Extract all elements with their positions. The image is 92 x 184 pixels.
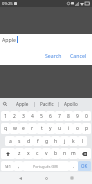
staticText: q: [4, 125, 8, 132]
button[interactable]: j: [60, 136, 69, 146]
button[interactable]: r: [28, 123, 37, 134]
staticText: Português (BR): [33, 164, 59, 169]
staticText: p: [85, 125, 89, 132]
staticText: f: [37, 138, 39, 145]
staticText: 7: [58, 113, 61, 120]
button[interactable]: z: [15, 148, 24, 159]
staticText: d: [27, 138, 31, 145]
button[interactable]: c: [33, 148, 42, 159]
staticText: y: [49, 125, 52, 132]
button[interactable]: Cancel: [68, 50, 89, 61]
button[interactable]: OK: [78, 161, 91, 171]
button[interactable]: q: [1, 123, 10, 134]
staticText: g: [45, 138, 49, 145]
button[interactable]: 1: [1, 111, 10, 121]
staticText: Apple: [2, 36, 16, 43]
staticText: 8: [67, 113, 70, 120]
button[interactable]: Pacific: [35, 98, 58, 110]
button[interactable]: Search: [43, 50, 64, 61]
staticText: 3: [22, 113, 25, 120]
button[interactable]: 8: [64, 111, 73, 121]
staticText: !#1: [5, 164, 11, 169]
button[interactable]: o: [73, 123, 82, 134]
staticText: s: [18, 138, 21, 145]
button[interactable]: Apollo: [59, 98, 82, 110]
button[interactable]: l: [78, 136, 87, 146]
button[interactable]: Backspace: [78, 148, 91, 159]
button[interactable]: k: [69, 136, 78, 146]
button[interactable]: Home: [40, 172, 52, 184]
button[interactable]: Search suggestions: [0, 98, 10, 110]
button[interactable]: ,: [14, 161, 23, 171]
staticText: z: [18, 150, 21, 157]
button[interactable]: h: [51, 136, 60, 146]
staticText: a: [9, 138, 12, 145]
button[interactable]: d: [24, 136, 33, 146]
staticText: Cancel: [70, 52, 87, 59]
staticText: e: [22, 125, 25, 132]
button[interactable]: 3: [19, 111, 28, 121]
staticText: n: [63, 150, 67, 157]
button[interactable]: Português (BR): [23, 161, 69, 171]
button[interactable]: !#1: [1, 161, 14, 171]
staticText: l: [82, 138, 84, 145]
button[interactable]: .: [69, 161, 78, 171]
button[interactable]: 6: [46, 111, 55, 121]
button[interactable]: w: [10, 123, 19, 134]
staticText: 5: [40, 113, 43, 120]
button[interactable]: Apple: [10, 98, 34, 110]
button[interactable]: 4: [28, 111, 37, 121]
button[interactable]: x: [24, 148, 33, 159]
button[interactable]: u: [55, 123, 64, 134]
button[interactable]: 0: [82, 111, 91, 121]
staticText: 0: [85, 113, 88, 120]
staticText: OK: [81, 163, 88, 169]
button[interactable]: Shift: [1, 148, 15, 159]
staticText: Apple: [16, 101, 29, 107]
staticText: ,: [18, 163, 20, 170]
staticText: 09:25: [2, 1, 13, 7]
staticText: h: [54, 138, 58, 145]
button[interactable]: Recent apps: [66, 172, 78, 184]
staticText: v: [45, 150, 48, 157]
staticText: 1: [4, 113, 7, 120]
button[interactable]: Back: [14, 172, 26, 184]
button[interactable]: y: [46, 123, 55, 134]
staticText: c: [36, 150, 39, 157]
staticText: 6: [49, 113, 52, 120]
button[interactable]: 2: [10, 111, 19, 121]
staticText: 4: [31, 113, 34, 120]
staticText: .: [73, 163, 75, 170]
button[interactable]: f: [33, 136, 42, 146]
button[interactable]: b: [51, 148, 60, 159]
staticText: x: [27, 150, 30, 157]
staticText: m: [71, 150, 76, 157]
staticText: k: [72, 138, 75, 145]
button[interactable]: 9: [73, 111, 82, 121]
button[interactable]: s: [15, 136, 24, 146]
staticText: 9: [76, 113, 79, 120]
staticText: r: [31, 125, 34, 132]
staticText: Search: [45, 52, 62, 59]
button[interactable]: 7: [55, 111, 64, 121]
staticText: j: [64, 138, 66, 145]
button[interactable]: n: [60, 148, 69, 159]
staticText: w: [13, 125, 17, 132]
button[interactable]: v: [42, 148, 51, 159]
staticText: b: [54, 150, 58, 157]
staticText: t: [41, 125, 43, 132]
button[interactable]: i: [64, 123, 73, 134]
staticText: u: [58, 125, 62, 132]
button[interactable]: p: [82, 123, 91, 134]
button[interactable]: g: [42, 136, 51, 146]
staticText: 2: [13, 113, 16, 120]
staticText: Pacific: [40, 101, 54, 107]
button[interactable]: e: [19, 123, 28, 134]
button[interactable]: 5: [37, 111, 46, 121]
button[interactable]: t: [37, 123, 46, 134]
button[interactable]: a: [5, 136, 15, 146]
staticText: i: [68, 125, 70, 132]
staticText: Apollo: [64, 101, 78, 107]
button[interactable]: m: [69, 148, 78, 159]
staticText: o: [76, 125, 80, 132]
